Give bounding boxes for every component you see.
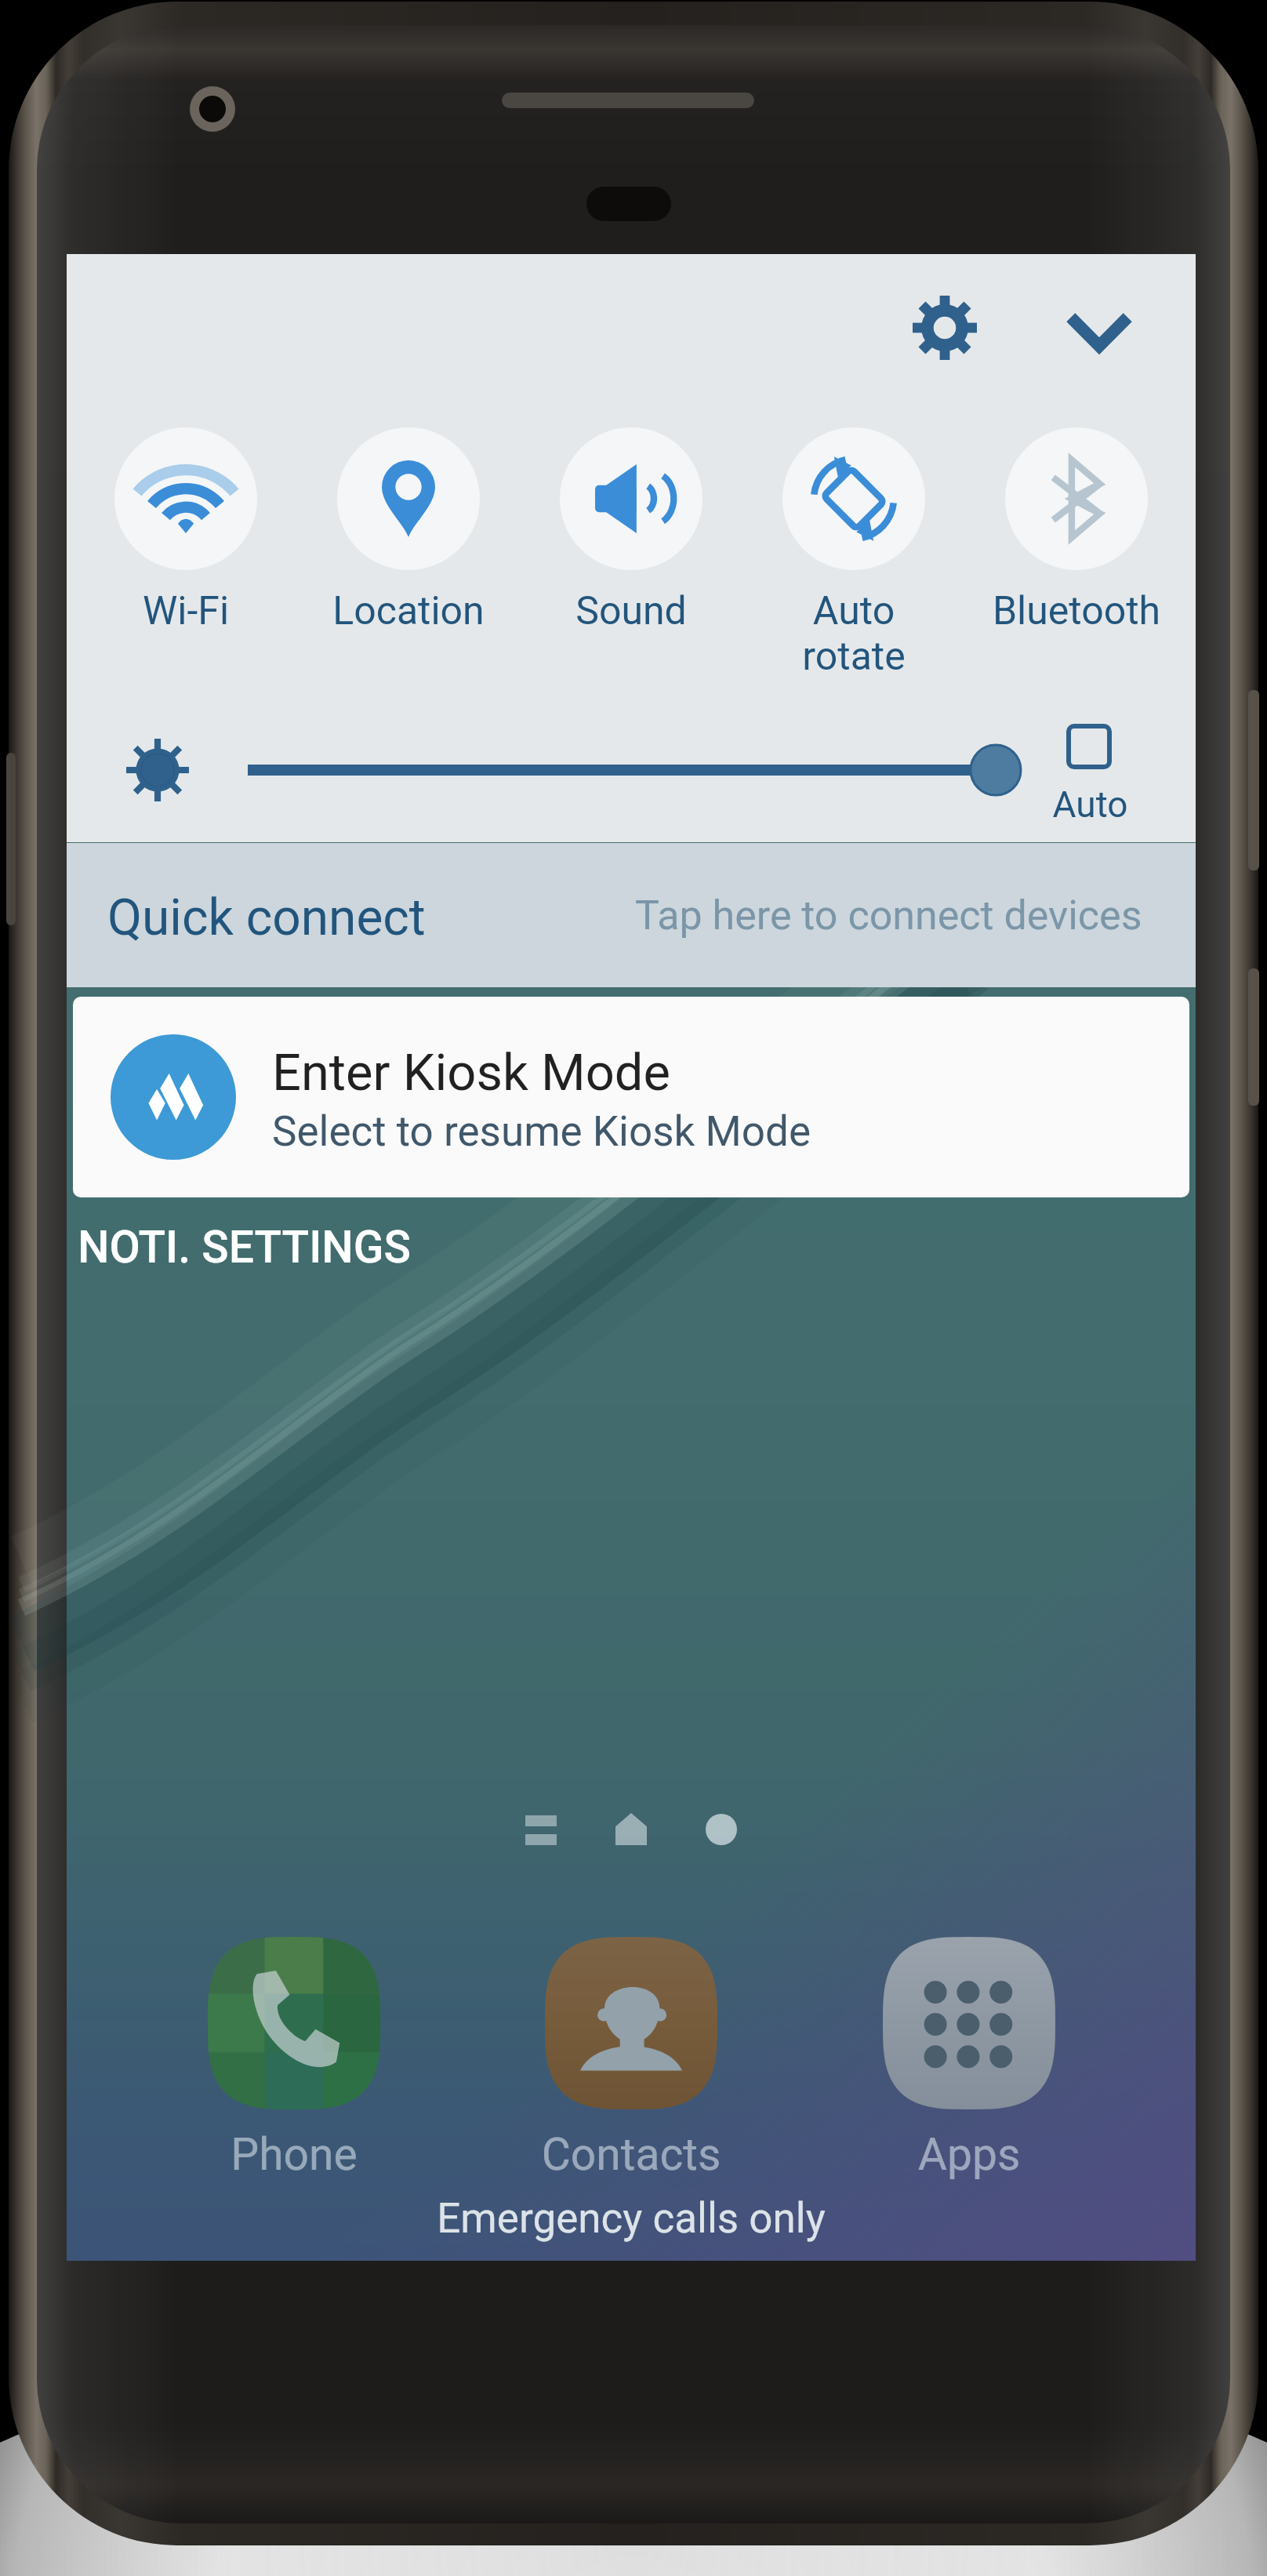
button[interactable]: Phone <box>184 1924 404 2183</box>
staticText: Emergency calls only <box>67 2194 1196 2243</box>
button[interactable]: Bluetooth <box>978 411 1174 662</box>
staticText: Location <box>310 588 506 634</box>
button[interactable]: Auto <box>1056 717 1189 827</box>
staticText: Bluetooth <box>978 588 1174 634</box>
button[interactable]: Enter Kiosk Mode <box>73 997 1189 1197</box>
button[interactable]: Contacts <box>521 1924 741 2183</box>
staticText: NOTI. SETTINGS <box>78 1221 412 1273</box>
staticText: Select to resume Kiosk Mode <box>272 1107 811 1156</box>
staticText: Contacts <box>521 2128 741 2181</box>
button[interactable]: Apps <box>859 1924 1079 2183</box>
staticText: Apps <box>859 2128 1079 2181</box>
button[interactable]: Location <box>310 411 506 662</box>
staticText: Sound <box>533 588 729 634</box>
staticText: Enter Kiosk Mode <box>272 1043 670 1103</box>
button[interactable]: Wi-Fi <box>88 411 284 662</box>
button[interactable]: Sound <box>533 411 729 662</box>
button[interactable]: Collapse panel <box>1051 283 1148 380</box>
staticText: Phone <box>184 2128 404 2181</box>
button[interactable]: Quick connect <box>67 843 1196 987</box>
button[interactable]: Settings <box>896 279 993 376</box>
staticText: Wi-Fi <box>88 588 284 634</box>
staticText: Tap here to connect devices <box>635 892 1142 939</box>
staticText: Auto <box>1049 783 1131 826</box>
staticText: Quick connect <box>107 888 426 947</box>
button[interactable]: Auto rotate <box>756 411 952 662</box>
staticText: Auto rotate <box>756 588 952 679</box>
